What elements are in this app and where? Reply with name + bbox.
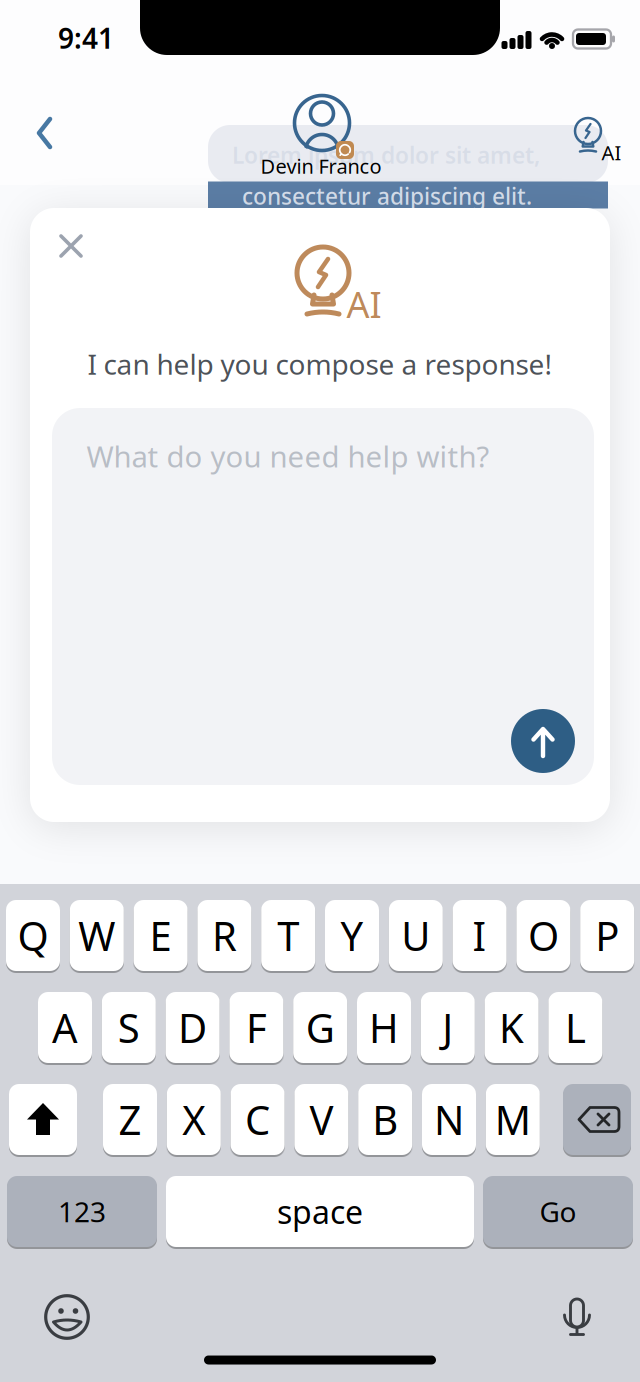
button[interactable]: 123 (7, 1176, 157, 1247)
button[interactable]: X (167, 1084, 221, 1155)
button[interactable] (563, 1084, 631, 1155)
staticText: Devin Franco (260, 153, 381, 179)
button[interactable]: F (229, 992, 283, 1063)
staticText: 9:41 (58, 19, 114, 57)
staticText: C (245, 1093, 270, 1146)
staticText: L (565, 1001, 586, 1054)
staticText: K (499, 1001, 524, 1054)
staticText: U (401, 909, 430, 962)
staticText: AI (346, 280, 381, 328)
button[interactable]: I (453, 900, 507, 971)
button[interactable] (561, 1297, 593, 1339)
staticText: Z (118, 1093, 141, 1146)
staticText: Lorem ipsum dolor sit amet, (232, 140, 540, 170)
button[interactable]: Q (6, 900, 60, 971)
staticText: I can help you compose a response! (87, 345, 552, 383)
staticText: R (212, 909, 237, 962)
staticText: D (178, 1001, 207, 1054)
button[interactable]: space (166, 1176, 474, 1247)
button[interactable]: E (134, 900, 188, 971)
button[interactable]: U (389, 900, 443, 971)
button[interactable]: Z (103, 1084, 157, 1155)
staticText: Go (539, 1193, 576, 1230)
button[interactable]: AI (575, 111, 623, 159)
staticText: A (52, 1001, 78, 1054)
button[interactable]: M (486, 1084, 540, 1155)
button[interactable]: C (231, 1084, 285, 1155)
button[interactable]: A (38, 992, 92, 1063)
button[interactable] (44, 1294, 90, 1340)
staticText: X (182, 1093, 205, 1146)
staticText: E (150, 909, 172, 962)
button[interactable]: L (548, 992, 602, 1063)
button[interactable]: O (516, 900, 570, 971)
button[interactable]: K (485, 992, 539, 1063)
staticText: O (528, 909, 559, 962)
button[interactable]: R (197, 900, 251, 971)
staticText: I (473, 909, 487, 962)
staticText: consectetur adipiscing elit. (242, 181, 532, 211)
button[interactable] (59, 234, 83, 258)
staticText: J (442, 1001, 453, 1054)
button[interactable]: H (357, 992, 411, 1063)
button[interactable]: W (70, 900, 124, 971)
staticText: M (495, 1093, 531, 1146)
button[interactable]: Y (325, 900, 379, 971)
staticText: G (306, 1001, 335, 1054)
staticText: V (309, 1093, 333, 1146)
button[interactable]: N (422, 1084, 476, 1155)
staticText: B (372, 1093, 398, 1146)
staticText: What do you need help with? (86, 436, 489, 475)
button[interactable]: J (421, 992, 475, 1063)
staticText: Y (340, 909, 363, 962)
button[interactable]: S (102, 992, 156, 1063)
button[interactable]: Go (483, 1176, 633, 1247)
button[interactable]: D (166, 992, 220, 1063)
staticText: T (277, 909, 299, 962)
staticText: N (434, 1093, 464, 1146)
staticText: Q (17, 909, 48, 962)
staticText: 123 (58, 1193, 106, 1230)
button[interactable]: P (580, 900, 634, 971)
staticText: AI (601, 139, 621, 166)
button[interactable]: V (294, 1084, 348, 1155)
button[interactable]: T (261, 900, 315, 971)
button[interactable] (35, 115, 55, 151)
button[interactable] (9, 1084, 77, 1155)
staticText: P (595, 909, 619, 962)
button[interactable] (511, 709, 575, 773)
staticText: S (118, 1001, 140, 1054)
staticText: W (78, 909, 115, 962)
staticText: space (277, 1190, 363, 1233)
button[interactable]: Devin Franco (292, 95, 352, 179)
button[interactable]: B (358, 1084, 412, 1155)
button[interactable]: G (293, 992, 347, 1063)
staticText: F (246, 1001, 267, 1054)
staticText: H (369, 1001, 399, 1054)
